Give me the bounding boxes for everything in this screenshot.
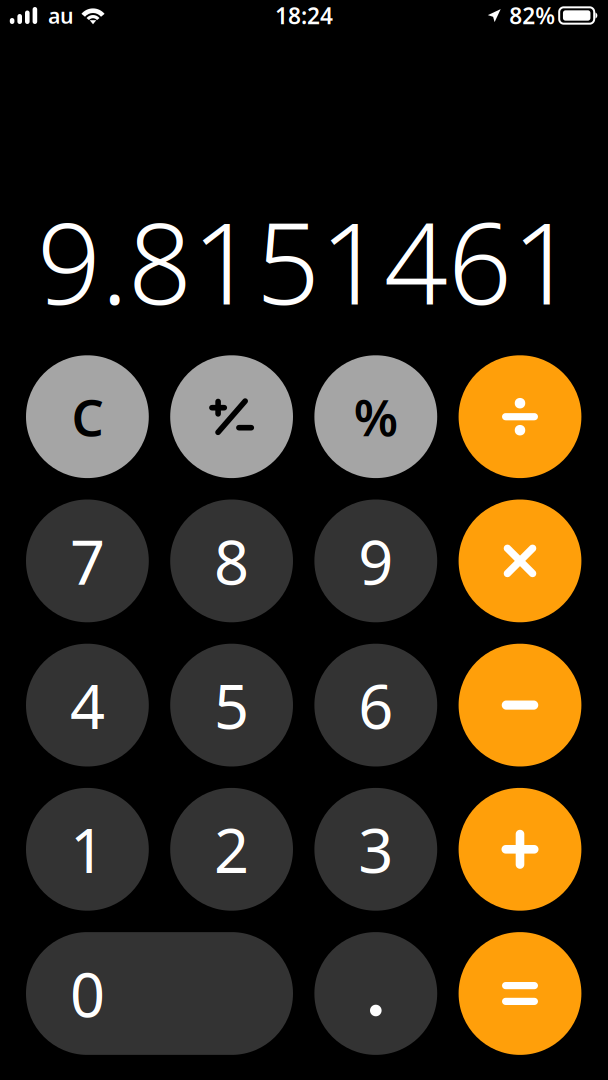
button[interactable]: 8: [170, 499, 293, 622]
staticText: %: [354, 383, 398, 450]
staticText: C: [71, 383, 103, 450]
button[interactable]: %: [314, 355, 437, 478]
button[interactable]: 5: [170, 644, 293, 766]
button[interactable]: 1: [26, 788, 149, 911]
button[interactable]: [170, 355, 293, 478]
button[interactable]: [459, 932, 581, 1055]
button[interactable]: C: [26, 355, 149, 478]
staticText: 2: [214, 809, 249, 890]
button[interactable]: [459, 499, 581, 622]
button[interactable]: [459, 644, 581, 766]
staticText: au: [48, 1, 74, 30]
staticText: 6: [358, 664, 393, 746]
button[interactable]: 2: [170, 788, 293, 911]
button[interactable]: [459, 788, 581, 911]
staticText: 5: [214, 664, 249, 746]
button[interactable]: [459, 355, 581, 478]
button[interactable]: 4: [26, 644, 149, 766]
button[interactable]: 0: [26, 932, 293, 1055]
staticText: 0: [70, 953, 105, 1034]
staticText: 3: [358, 809, 393, 890]
button[interactable]: 3: [314, 788, 437, 911]
button[interactable]: 6: [314, 644, 437, 766]
staticText: 4: [70, 664, 105, 746]
button[interactable]: 9: [314, 499, 437, 622]
staticText: 82%: [509, 0, 555, 30]
staticText: 7: [70, 520, 105, 602]
staticText: 9.8151461: [37, 187, 576, 335]
staticText: 18:24: [275, 0, 333, 30]
button[interactable]: Decimal point: [314, 932, 437, 1055]
button[interactable]: 7: [26, 499, 149, 622]
staticText: 9: [358, 520, 393, 602]
staticText: 8: [214, 520, 249, 602]
staticText: 1: [70, 809, 105, 890]
